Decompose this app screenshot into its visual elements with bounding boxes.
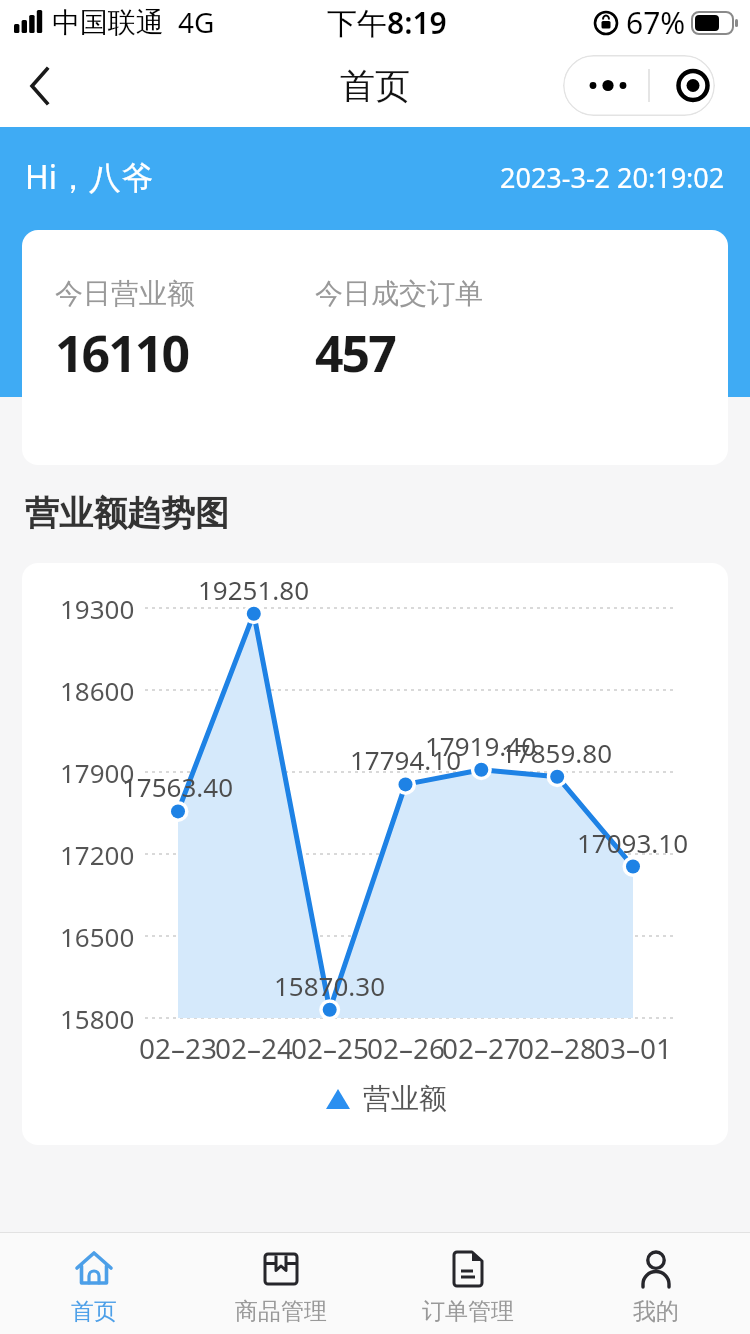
button[interactable]	[18, 64, 62, 108]
staticText: 19251.80	[198, 572, 310, 604]
button[interactable]: 商品管理	[187, 1233, 374, 1334]
staticText: 17919.40	[425, 728, 537, 760]
staticText: 457	[315, 319, 395, 387]
staticText: 15800	[60, 1001, 135, 1035]
staticText: 17859.80	[501, 735, 613, 767]
staticText: 02–23	[139, 1029, 218, 1063]
staticText: 02–28	[518, 1029, 597, 1063]
staticText: 今日营业额	[55, 276, 195, 311]
staticText: 02–27	[442, 1029, 521, 1063]
staticText: 今日成交订单	[315, 276, 483, 311]
button[interactable]: 我的	[562, 1233, 750, 1334]
staticText: 首页	[340, 64, 410, 108]
staticText: 中国联通	[52, 5, 164, 40]
staticText: 02–25	[291, 1029, 370, 1063]
staticText: 17093.10	[577, 825, 689, 857]
staticText: Hi，八爷	[25, 155, 153, 199]
staticText: 67%	[626, 2, 686, 43]
button[interactable]: 今日营业额	[22, 230, 728, 465]
staticText: 首页	[71, 1297, 117, 1326]
button[interactable]: 首页	[0, 1233, 187, 1334]
staticText: 营业额	[363, 1081, 447, 1116]
staticText: 19300	[60, 591, 135, 625]
staticText: 18600	[60, 673, 135, 707]
staticText: 16110	[55, 319, 188, 387]
staticText: 我的	[633, 1297, 679, 1326]
staticText: 02–24	[215, 1029, 294, 1063]
staticText: 17200	[60, 837, 135, 871]
staticText: 营业额趋势图	[25, 492, 229, 535]
staticText: 17563.40	[122, 769, 234, 801]
button[interactable]	[563, 55, 715, 116]
button[interactable]: 订单管理	[374, 1233, 562, 1334]
staticText: 2023-3-2 20:19:02	[500, 159, 725, 196]
staticText: 16500	[60, 919, 135, 953]
staticText: 17794.10	[350, 742, 462, 774]
staticText: 17900	[60, 755, 135, 789]
staticText: 03–01	[594, 1029, 673, 1063]
staticText: 订单管理	[422, 1297, 514, 1326]
staticText: 商品管理	[235, 1297, 327, 1326]
staticText: 下午8:19	[327, 2, 447, 43]
staticText: 15870.30	[274, 968, 386, 1000]
staticText: 4G	[178, 3, 215, 41]
staticText: 02–26	[367, 1029, 446, 1063]
